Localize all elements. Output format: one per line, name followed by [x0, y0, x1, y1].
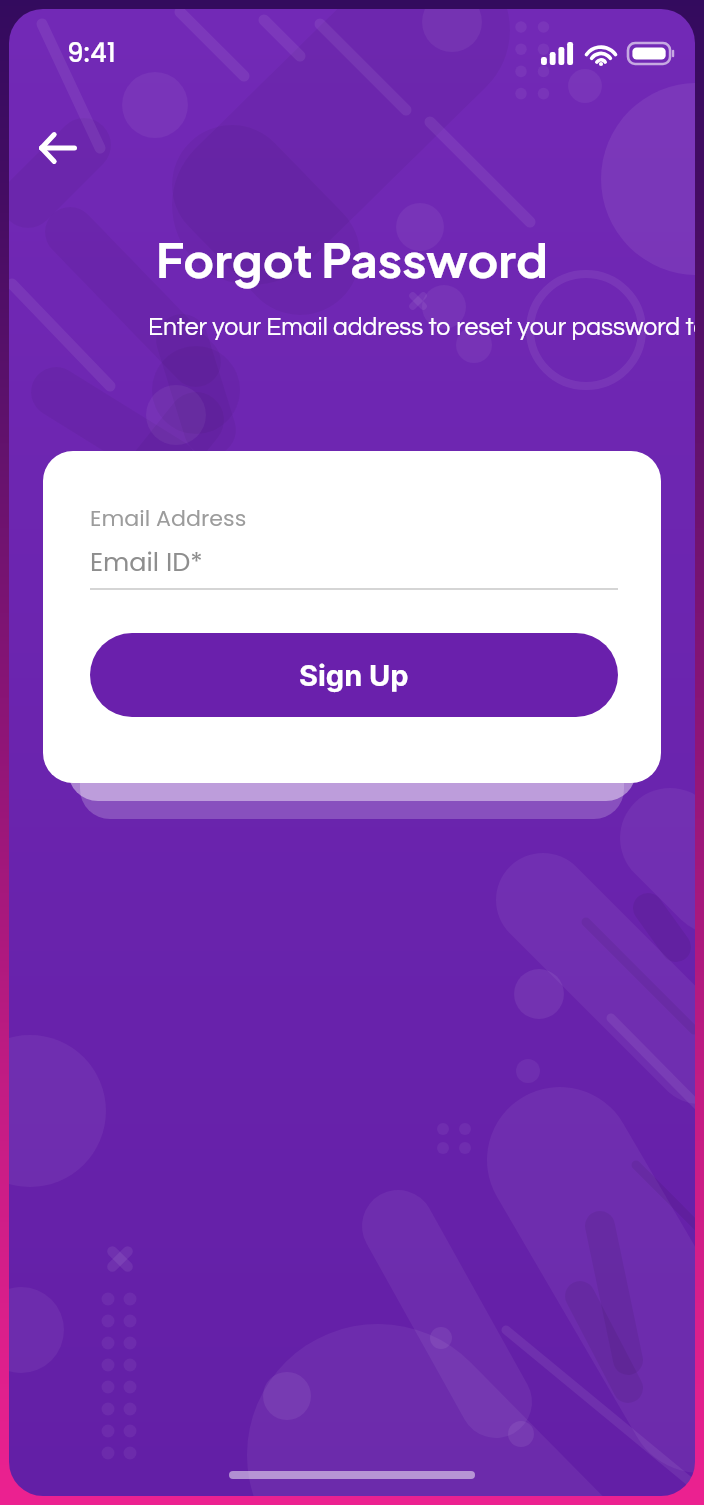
button[interactable]: Back	[25, 115, 91, 181]
staticText: Email Address	[90, 503, 247, 534]
staticText: Forgot Password	[9, 229, 695, 289]
staticText: Email ID*	[90, 544, 203, 580]
staticText: Enter your Email address to reset your p…	[148, 315, 695, 341]
button[interactable]: Sign Up	[90, 633, 618, 717]
staticText: 9:41	[67, 35, 116, 71]
staticText: Sign Up	[299, 658, 409, 693]
